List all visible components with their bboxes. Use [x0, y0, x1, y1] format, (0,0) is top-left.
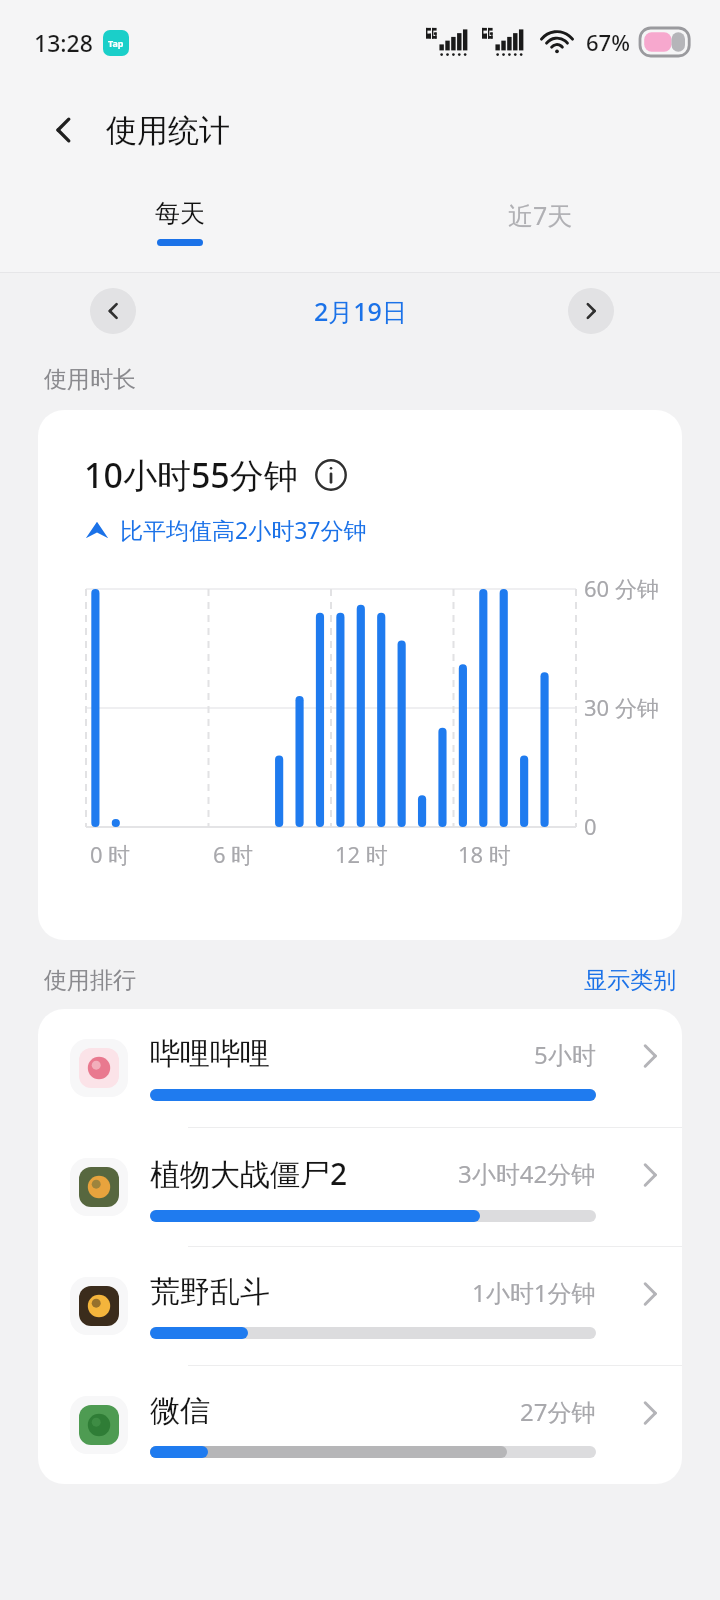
staticText: 2月19日	[314, 294, 407, 328]
staticText: 10小时55分钟	[84, 452, 298, 498]
staticText: 0 时	[90, 839, 131, 869]
staticText: 18 时	[458, 839, 511, 869]
button[interactable]: 近7天	[360, 198, 720, 272]
staticText: 显示类别	[584, 966, 676, 995]
button[interactable]: 植物大战僵尸2	[38, 1128, 682, 1247]
staticText: 3小时42分钟	[458, 1157, 596, 1190]
staticText: 67%	[586, 27, 630, 57]
button[interactable]: 荒野乱斗	[38, 1247, 682, 1366]
button[interactable]: 哔哩哔哩	[38, 1009, 682, 1128]
staticText: 植物大战僵尸2	[150, 1153, 348, 1194]
staticText: 比平均值高2小时37分钟	[120, 514, 367, 545]
staticText: 5小时	[534, 1038, 596, 1071]
staticText: 微信	[150, 1392, 210, 1430]
staticText: 0	[584, 811, 597, 841]
staticText: 27分钟	[520, 1395, 596, 1428]
staticText: 30 分钟	[584, 692, 659, 722]
staticText: 6 时	[213, 839, 254, 869]
staticText: 哔哩哔哩	[150, 1035, 270, 1073]
button[interactable]: Previous day	[90, 288, 136, 334]
button[interactable]: 显示类别	[584, 966, 676, 995]
button[interactable]: Next day	[568, 288, 614, 334]
staticText: 荒野乱斗	[150, 1273, 270, 1311]
button[interactable]: 微信	[38, 1366, 682, 1484]
staticText: 使用时长	[44, 365, 136, 394]
staticText: 13:28	[34, 27, 93, 58]
staticText: Tap	[108, 37, 124, 49]
staticText: 近7天	[508, 198, 573, 232]
staticText: 12 时	[335, 839, 388, 869]
staticText: 1小时1分钟	[472, 1276, 596, 1309]
staticText: 使用排行	[44, 966, 136, 995]
button[interactable]: 每天	[0, 198, 360, 272]
staticText: 使用统计	[106, 111, 230, 150]
button[interactable]: Back	[38, 104, 90, 156]
button[interactable]: 10小时55分钟	[38, 410, 682, 940]
staticText: 60 分钟	[584, 573, 659, 603]
staticText: 每天	[155, 198, 205, 229]
button[interactable]: Info	[314, 458, 348, 492]
